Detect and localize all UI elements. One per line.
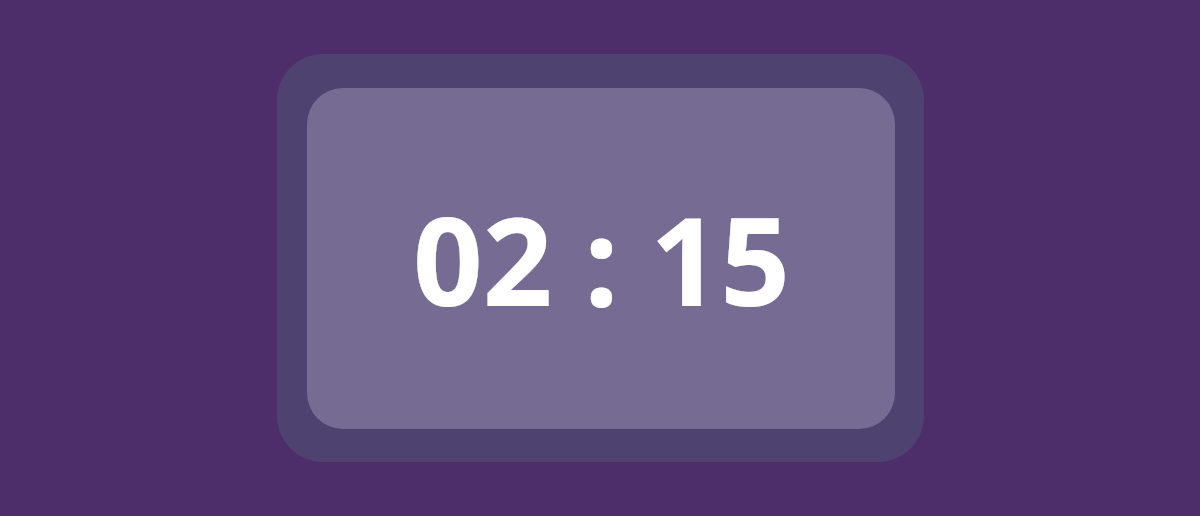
button[interactable]: Timer 02:15 — [277, 54, 924, 462]
staticText: 02 : 15 — [413, 176, 790, 342]
